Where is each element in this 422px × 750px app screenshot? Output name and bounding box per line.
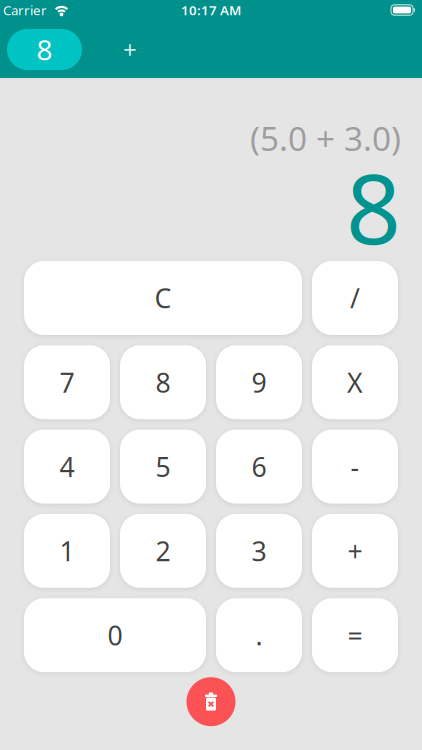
button[interactable]: 8 [120,345,206,419]
staticText: + [123,34,137,65]
staticText: 3 [251,533,266,569]
staticText: 5 [155,449,170,484]
button[interactable]: 0 [24,598,206,672]
button[interactable]: 2 [120,514,206,588]
button[interactable]: 8 [7,29,82,70]
staticText: = [347,617,362,653]
staticText: / [350,280,360,316]
staticText: - [350,449,359,484]
staticText: 1 [59,533,74,569]
staticText: 6 [251,449,266,484]
staticText: 8 [346,143,401,271]
button[interactable]: - [312,430,398,504]
button[interactable]: 3 [216,514,302,588]
staticText: Carrier [3,1,47,19]
button[interactable]: Clear history [186,677,235,726]
button[interactable]: = [312,598,398,672]
button[interactable]: 6 [216,430,302,504]
staticText: (5.0 + 3.0) [250,116,401,160]
staticText: 8 [155,365,170,400]
staticText: + [347,533,362,569]
staticText: 10:17 AM [181,1,241,19]
button[interactable]: C [24,261,302,335]
staticText: 9 [251,365,266,400]
button[interactable]: + [312,514,398,588]
button[interactable]: 1 [24,514,110,588]
staticText: 2 [155,533,170,569]
button[interactable]: X [312,345,398,419]
staticText: 8 [36,31,52,68]
staticText: . [255,617,262,653]
button[interactable]: New expression [110,29,150,70]
staticText: C [154,280,171,316]
button[interactable]: 4 [24,430,110,504]
button[interactable]: 7 [24,345,110,419]
button[interactable]: . [216,598,302,672]
button[interactable]: 5 [120,430,206,504]
staticText: 0 [107,617,122,653]
button[interactable]: / [312,261,398,335]
staticText: 7 [59,365,74,400]
staticText: X [347,365,363,400]
staticText: 4 [59,449,74,484]
button[interactable]: 9 [216,345,302,419]
